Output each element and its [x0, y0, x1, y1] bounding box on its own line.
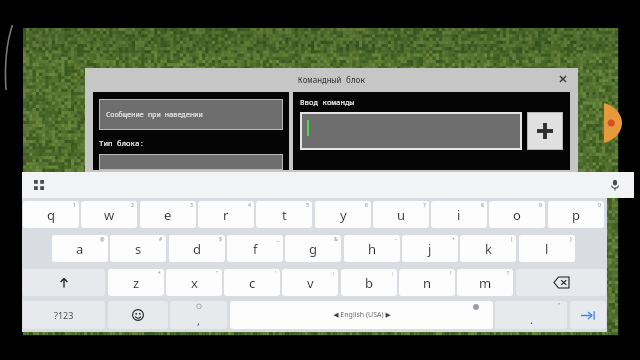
button[interactable]: l — [519, 235, 575, 262]
staticText: 4 — [248, 202, 251, 209]
button[interactable]: p — [548, 201, 604, 228]
button[interactable]: Сообщение при наведении — [100, 100, 282, 129]
staticText: - — [395, 236, 397, 243]
staticText: p — [572, 206, 580, 224]
staticText: Тип блока: — [99, 138, 144, 148]
staticText: n — [423, 274, 432, 292]
staticText: j — [428, 240, 432, 258]
button[interactable]: Voice input — [606, 176, 624, 194]
staticText: : — [333, 270, 335, 277]
button[interactable] — [302, 114, 520, 148]
button[interactable]: m — [457, 269, 513, 296]
staticText: f — [253, 240, 258, 258]
staticText: v — [307, 274, 314, 292]
staticText: z — [133, 274, 140, 292]
button[interactable]: Add command — [528, 113, 562, 149]
staticText: i — [457, 206, 461, 224]
staticText: . — [530, 312, 533, 327]
staticText: + — [452, 236, 455, 243]
staticText: c — [249, 274, 256, 292]
button[interactable]: a — [52, 235, 108, 262]
staticText: m — [479, 274, 492, 292]
button[interactable]: o — [489, 201, 545, 228]
button[interactable]: s — [110, 235, 166, 262]
staticText: 0 — [598, 202, 601, 209]
staticText: 2 — [131, 202, 134, 209]
staticText: u — [397, 206, 406, 224]
staticText: t — [282, 206, 287, 224]
staticText: ' — [275, 270, 277, 277]
button[interactable]: t — [256, 201, 312, 228]
staticText: e — [164, 206, 172, 224]
button[interactable]: Close — [556, 72, 570, 86]
staticText: 3 — [190, 202, 193, 209]
button[interactable]: e — [140, 201, 196, 228]
button[interactable]: ?123 — [23, 301, 105, 329]
staticText: * — [158, 270, 161, 277]
button[interactable]: q — [23, 201, 79, 228]
staticText: Ввод команды — [300, 97, 354, 107]
staticText: ( — [511, 236, 513, 243]
staticText: ◀ English (USA) ▶ — [333, 310, 391, 320]
button[interactable]: v — [282, 269, 338, 296]
staticText: Командный блок — [298, 74, 366, 85]
button[interactable]: d — [169, 235, 225, 262]
staticText: 1 — [73, 202, 76, 209]
staticText: ! — [450, 270, 452, 277]
staticText: o — [513, 206, 521, 224]
button[interactable]: u — [373, 201, 429, 228]
staticText: # — [159, 236, 163, 243]
staticText: ; — [392, 270, 394, 277]
staticText: d — [193, 240, 201, 258]
staticText: Сообщение при наведении — [106, 110, 203, 120]
staticText: 5 — [306, 202, 309, 209]
staticText: g — [309, 240, 317, 258]
button[interactable]: , — [170, 301, 227, 329]
button[interactable]: r — [198, 201, 254, 228]
staticText: ? — [507, 270, 510, 277]
button[interactable]: Emoji — [108, 301, 168, 329]
button[interactable]: . — [495, 301, 567, 329]
staticText: k — [485, 240, 492, 258]
staticText: $ — [219, 236, 222, 243]
staticText: l — [545, 240, 549, 258]
button[interactable]: i — [431, 201, 487, 228]
staticText: r — [223, 206, 229, 224]
staticText: s — [135, 240, 142, 258]
staticText: w — [104, 206, 115, 224]
other: Joystick — [604, 103, 620, 143]
staticText: " — [216, 270, 219, 277]
staticText: 7 — [423, 202, 426, 209]
staticText: 6 — [365, 202, 368, 209]
button[interactable]: c — [224, 269, 280, 296]
staticText: ) — [570, 236, 572, 243]
button[interactable]: z — [108, 269, 164, 296]
staticText: & — [334, 236, 338, 243]
button[interactable]: k — [460, 235, 516, 262]
staticText: " — [558, 301, 561, 309]
staticText: @ — [100, 236, 105, 243]
button[interactable]: w — [81, 201, 137, 228]
button[interactable]: y — [315, 201, 371, 228]
button[interactable]: f — [227, 235, 283, 262]
staticText: 9 — [539, 202, 542, 209]
staticText: ?123 — [54, 309, 74, 321]
button[interactable]: b — [341, 269, 397, 296]
staticText: _ — [277, 236, 280, 243]
staticText: , — [197, 313, 200, 328]
button[interactable]: g — [285, 235, 341, 262]
button[interactable]: Enter — [570, 301, 606, 329]
button[interactable]: n — [399, 269, 455, 296]
button[interactable]: Shift — [23, 269, 105, 296]
staticText: q — [47, 206, 55, 224]
button[interactable]: Keyboard options — [30, 176, 48, 194]
staticText: 8 — [481, 202, 484, 209]
button[interactable]: j — [402, 235, 458, 262]
staticText: h — [368, 240, 377, 258]
button[interactable]: Space — [230, 301, 493, 329]
staticText: b — [365, 274, 373, 292]
button[interactable]: x — [166, 269, 222, 296]
button[interactable]: h — [344, 235, 400, 262]
button[interactable]: Backspace — [516, 269, 606, 296]
